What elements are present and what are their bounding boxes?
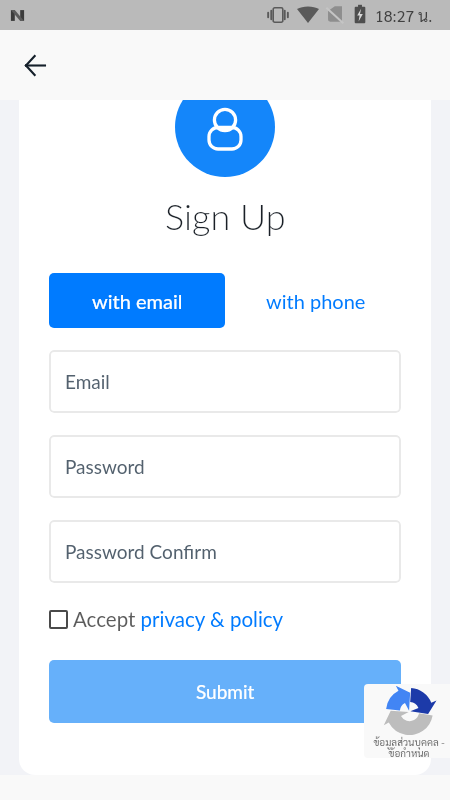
button[interactable]: Email [49,350,401,413]
staticText: Password Confirm [65,540,217,563]
button[interactable]: Back [14,44,56,86]
button[interactable]: Submit [49,660,401,723]
button[interactable]: Accept terms checkbox [49,610,68,629]
button[interactable]: Password Confirm [49,520,401,583]
button[interactable]: reCAPTCHA [364,684,450,758]
staticText: Password [65,455,145,478]
staticText: Submit [196,680,255,703]
staticText: ข้อมูลส่วนบุคคล - ข้อกำหนด [365,735,450,758]
staticText: Accept privacy & policy [73,607,284,632]
staticText: with phone [266,289,366,313]
staticText: 18:27 น. [375,5,433,26]
button[interactable]: with email [49,273,225,328]
button[interactable]: with phone [258,273,373,328]
staticText: Sign Up [165,194,286,237]
staticText: with email [92,289,183,313]
button[interactable]: Password [49,435,401,498]
staticText: Email [65,370,110,393]
